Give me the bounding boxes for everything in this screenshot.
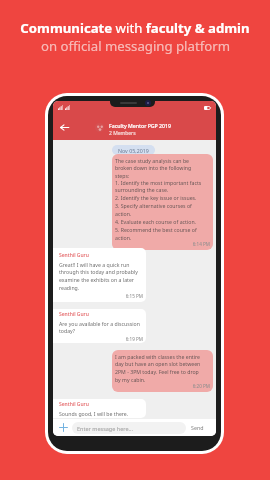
staticText: 6:20 PM	[115, 383, 210, 389]
staticText: Senthil Guru	[59, 311, 89, 318]
staticText: Nov 05,2019	[118, 147, 149, 154]
button[interactable]: The case study analysis can be broken do…	[112, 154, 213, 250]
staticText: Send	[191, 424, 204, 431]
staticText: Great!! I will have a quick run through …	[59, 261, 146, 292]
staticText: Senthil Guru	[59, 401, 89, 408]
button[interactable]: Send	[190, 422, 205, 433]
staticText: 6:19 PM	[59, 336, 143, 342]
button[interactable]: Back	[57, 120, 72, 135]
staticText: Faculty Mentor PGP 2019	[109, 122, 171, 129]
staticText: Communicate with faculty & admin	[20, 19, 250, 37]
button[interactable]: Senthil Guru	[53, 248, 146, 302]
button[interactable]: I am packed with classes the entire day …	[112, 350, 213, 392]
staticText: on official messaging platform	[41, 37, 230, 55]
button[interactable]: Senthil Guru	[53, 309, 146, 343]
staticText: Sounds good, I will be there.	[59, 410, 129, 417]
staticText: Enter message here...	[77, 425, 133, 432]
staticText: 1. Identify the most important facts sur…	[115, 179, 202, 241]
button[interactable]: Add attachment	[58, 422, 69, 433]
staticText: Senthil Guru	[59, 252, 89, 259]
staticText: Are you available for a discussion today…	[59, 320, 146, 335]
staticText: 6:15 PM	[59, 293, 143, 299]
staticText: 6:14 PM	[115, 241, 210, 247]
staticText: I am packed with classes the entire day …	[115, 353, 201, 383]
button[interactable]: Enter message here...	[72, 422, 186, 434]
button[interactable]: Senthil Guru	[53, 399, 146, 418]
staticText: The case study analysis can be broken do…	[115, 157, 192, 179]
staticText: 2 Members	[109, 130, 136, 137]
